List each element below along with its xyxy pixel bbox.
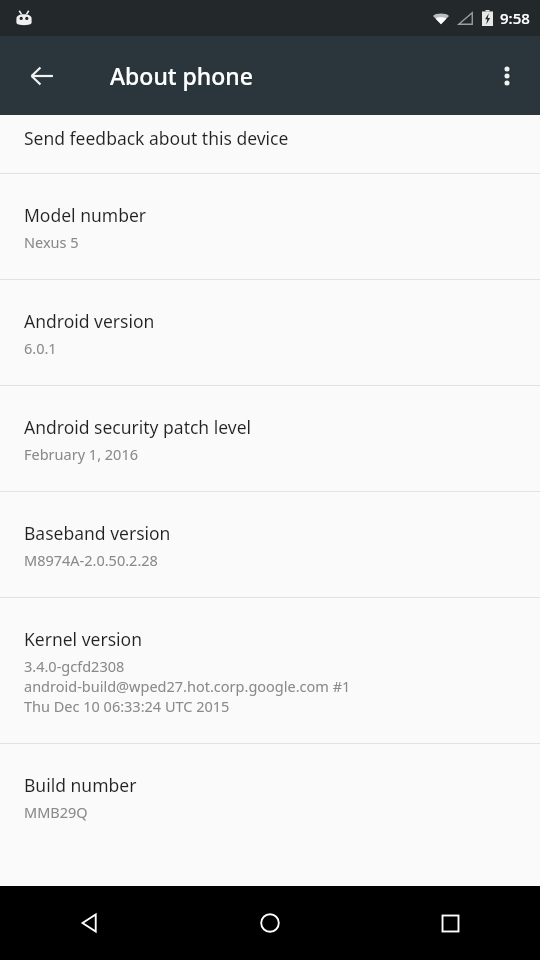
staticText: Model number: [24, 203, 147, 227]
staticText: Build number: [24, 773, 137, 797]
staticText: Android security patch level: [24, 415, 252, 439]
staticText: android-build@wped27.hot.corp.google.com…: [24, 676, 351, 696]
button[interactable]: Android security patch level: [0, 386, 540, 491]
staticText: Android version: [24, 309, 155, 333]
button[interactable]: Kernel version: [0, 598, 540, 743]
staticText: 6.0.1: [24, 338, 57, 358]
button[interactable]: Back: [0, 886, 180, 960]
staticText: 3.4.0-gcfd2308: [24, 656, 125, 676]
button[interactable]: Recent apps: [360, 886, 540, 960]
button[interactable]: Baseband version: [0, 492, 540, 597]
staticText: MMB29Q: [24, 802, 88, 822]
button[interactable]: Model number: [0, 174, 540, 279]
staticText: February 1, 2016: [24, 444, 138, 464]
staticText: 9:58: [500, 8, 530, 28]
button[interactable]: Android version: [0, 280, 540, 385]
button[interactable]: Home: [180, 886, 360, 960]
staticText: Kernel version: [24, 627, 142, 651]
staticText: Baseband version: [24, 521, 171, 545]
staticText: Thu Dec 10 06:33:24 UTC 2015: [24, 696, 230, 716]
staticText: About phone: [110, 60, 253, 91]
button[interactable]: Send feedback about this device: [0, 115, 540, 173]
button[interactable]: Navigate up: [12, 46, 72, 106]
staticText: M8974A-2.0.50.2.28: [24, 550, 158, 570]
button[interactable]: Build number: [0, 744, 540, 849]
staticText: Nexus 5: [24, 232, 79, 252]
button[interactable]: More options: [479, 48, 535, 104]
staticText: Send feedback about this device: [24, 126, 289, 150]
